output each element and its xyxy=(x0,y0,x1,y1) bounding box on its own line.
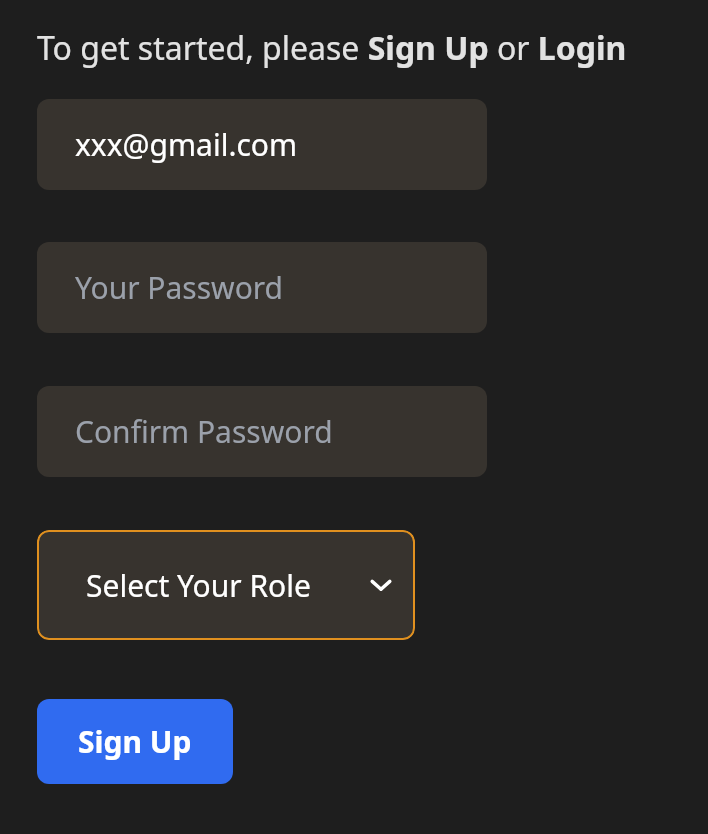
button[interactable]: Confirm Password xyxy=(37,386,487,477)
staticText: Sign Up xyxy=(78,721,192,762)
other: Expand role options xyxy=(366,570,396,600)
staticText: Confirm Password xyxy=(75,411,333,452)
button[interactable]: Sign Up xyxy=(37,699,233,784)
staticText: xxx@gmail.com xyxy=(75,124,298,165)
staticText: To get started, please Sign Up or Login xyxy=(37,26,627,70)
button[interactable]: xxx@gmail.com xyxy=(37,99,487,190)
staticText: Select Your Role xyxy=(86,565,311,606)
button[interactable]: Select Your Role xyxy=(37,530,415,640)
staticText: Your Password xyxy=(75,267,284,308)
button[interactable]: Your Password xyxy=(37,242,487,333)
